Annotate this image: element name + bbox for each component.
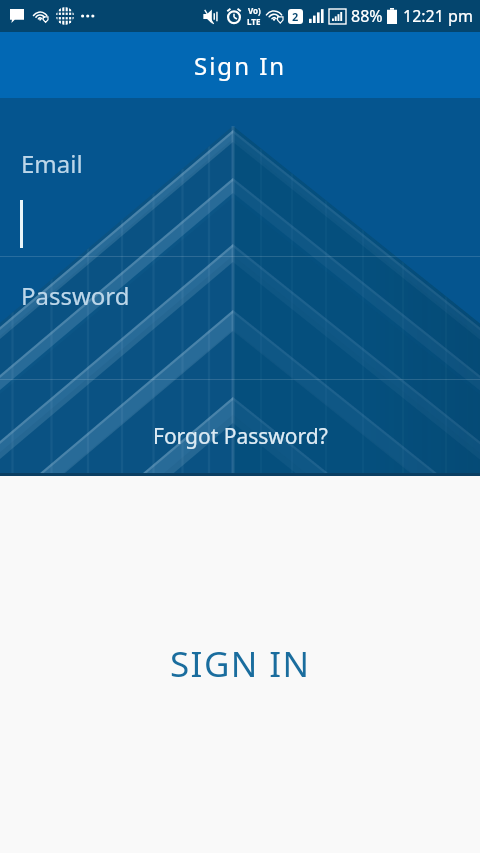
staticText: LTE	[247, 16, 261, 27]
staticText: 88%	[351, 5, 383, 27]
staticText: 2	[292, 9, 299, 24]
button[interactable]: SIGN IN	[140, 628, 341, 700]
staticText: 12:21 pm	[403, 5, 473, 27]
staticText: SIGN IN	[170, 640, 311, 688]
button[interactable]: Password	[0, 257, 480, 379]
staticText: Sign In	[194, 49, 287, 82]
staticText: Vo)	[248, 5, 261, 16]
button[interactable]: Forgot Password?	[137, 412, 344, 461]
button[interactable]: Email	[0, 98, 480, 256]
staticText: Password	[21, 279, 130, 312]
staticText: Email	[21, 147, 83, 180]
